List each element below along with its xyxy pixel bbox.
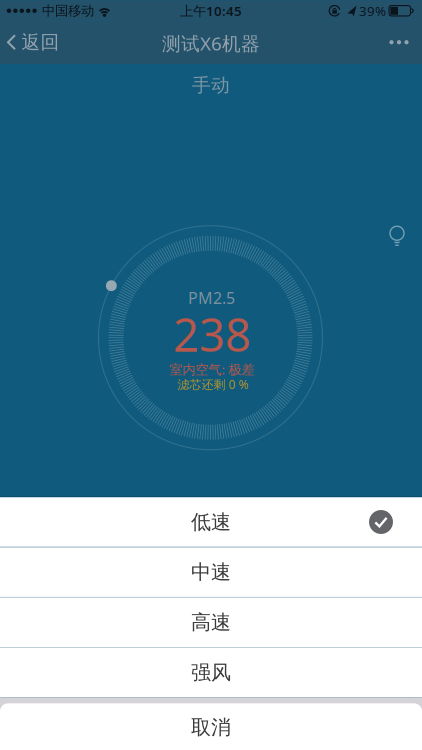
- staticText: 取消: [191, 715, 231, 740]
- button[interactable]: 返回: [6, 20, 59, 64]
- staticText: 238: [173, 304, 251, 364]
- staticText: 手动: [192, 74, 230, 97]
- staticText: 低速: [191, 510, 231, 534]
- button[interactable]: 高速: [0, 598, 422, 647]
- button[interactable]: 更多: [378, 29, 419, 55]
- button[interactable]: 低速: [0, 497, 422, 547]
- staticText: 中速: [191, 560, 231, 584]
- staticText: 上午10:45: [180, 2, 242, 20]
- button[interactable]: 中速: [0, 547, 422, 597]
- button[interactable]: 灯光: [376, 215, 418, 257]
- staticText: 测试X6机器: [162, 31, 260, 56]
- staticText: 滤芯还剩 0 %: [177, 376, 248, 392]
- staticText: 高速: [191, 610, 231, 635]
- button[interactable]: 取消: [0, 705, 422, 749]
- staticText: 39%: [359, 2, 386, 20]
- staticText: 中国移动: [42, 3, 94, 19]
- staticText: 强风: [191, 660, 231, 685]
- button[interactable]: 强风: [0, 648, 422, 697]
- staticText: 返回: [21, 31, 59, 54]
- staticText: PM2.5: [188, 287, 235, 308]
- staticText: 室内空气: 极差: [169, 360, 254, 378]
